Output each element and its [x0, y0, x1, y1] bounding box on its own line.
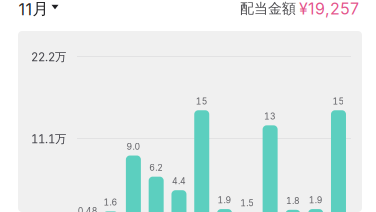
staticText: 22.2万: [31, 50, 66, 64]
staticText: 1.9: [309, 195, 323, 205]
staticText: 15: [196, 96, 208, 106]
staticText: 11月: [18, 0, 48, 19]
staticText: 1.6: [104, 197, 118, 208]
button[interactable]: 11月: [18, 0, 64, 19]
staticText: 15: [332, 96, 344, 106]
staticText: 11.1万: [31, 132, 66, 146]
staticText: ¥19,257: [299, 0, 359, 18]
staticText: 6.2: [149, 162, 163, 173]
staticText: 0.48: [78, 205, 98, 212]
staticText: 配当金額: [240, 0, 296, 17]
staticText: 1.9: [217, 195, 231, 205]
staticText: 4.4: [172, 176, 186, 186]
staticText: 9.0: [126, 141, 140, 152]
staticText: 13: [264, 111, 276, 122]
staticText: 1.5: [240, 198, 254, 208]
staticText: 1.8: [286, 196, 300, 206]
